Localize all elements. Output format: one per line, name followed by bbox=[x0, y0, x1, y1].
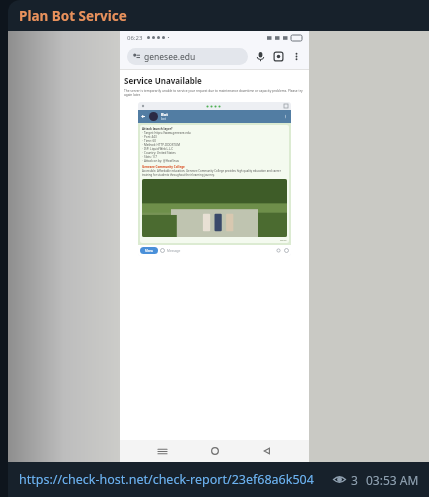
button[interactable]: Back bbox=[257, 441, 277, 461]
button[interactable]: genesee.edu bbox=[127, 48, 248, 65]
button[interactable]: Menu bbox=[140, 247, 158, 254]
staticText: · bbox=[142, 131, 144, 135]
staticText: genesee.edu bbox=[144, 51, 196, 63]
staticText: · bbox=[142, 159, 144, 163]
button[interactable]: Home bbox=[205, 441, 225, 461]
button[interactable]: Lens bbox=[273, 51, 284, 62]
staticText: ISP: Liquid Web L.L.C bbox=[144, 147, 174, 151]
staticText: Country: United States bbox=[144, 151, 176, 155]
staticText: Time: 60 bbox=[144, 139, 156, 143]
button[interactable]: Recents bbox=[152, 441, 172, 461]
staticText: · bbox=[142, 155, 144, 159]
staticText: Bot bbox=[161, 112, 168, 117]
other: Views bbox=[333, 473, 346, 486]
staticText: Genesee Community College bbox=[142, 165, 185, 169]
staticText: · bbox=[142, 139, 144, 143]
staticText: Menu bbox=[145, 249, 154, 253]
staticText: Accessible. Affordable education. Genese… bbox=[142, 169, 287, 177]
staticText: Attack launch layer? bbox=[142, 127, 173, 131]
staticText: Message bbox=[167, 249, 181, 253]
staticText: https://check-host.net/check-report/23ef… bbox=[19, 471, 314, 488]
staticText: Slots: 1/7 bbox=[144, 155, 157, 159]
staticText: · bbox=[142, 151, 144, 155]
staticText: · bbox=[142, 147, 144, 151]
staticText: Plan Bot Service bbox=[19, 7, 127, 25]
staticText: 06:23 bbox=[127, 34, 143, 42]
staticText: Service Unavailable bbox=[124, 75, 202, 86]
staticText: 06:23 bbox=[280, 238, 287, 241]
staticText: · bbox=[142, 135, 144, 139]
staticText: Method: HTTP-DDOSTUM bbox=[144, 143, 180, 147]
staticText: The server is temporarily unable to serv… bbox=[124, 89, 305, 97]
staticText: · bbox=[142, 143, 144, 147]
staticText: Attack on by: @HostSnus bbox=[144, 159, 179, 163]
button[interactable]: Voice search bbox=[255, 51, 266, 62]
staticText: 03:53 AM bbox=[366, 472, 419, 488]
staticText: 3 bbox=[351, 472, 358, 488]
staticText: bot bbox=[161, 117, 166, 121]
staticText: Target: https://www.genesee.edu bbox=[144, 131, 191, 135]
button[interactable]: More options bbox=[291, 51, 302, 62]
staticText: Port: 443 bbox=[144, 135, 157, 139]
button[interactable]: Plan Bot Service bbox=[8, 0, 429, 31]
button[interactable]: https://check-host.net/check-report/23ef… bbox=[19, 471, 314, 488]
